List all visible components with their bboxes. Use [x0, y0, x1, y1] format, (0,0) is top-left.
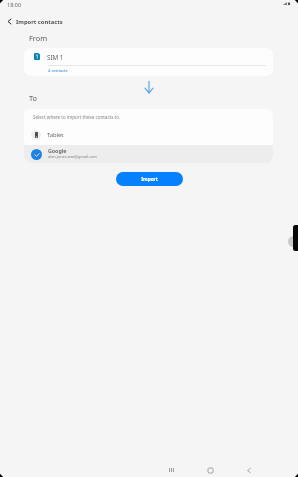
staticText: 18:00 [7, 1, 22, 8]
staticText: Tablet [47, 131, 64, 139]
staticText: To [29, 93, 38, 103]
button[interactable]: Back [0, 12, 19, 31]
staticText: Select where to import these contacts to… [33, 114, 121, 120]
staticText: Import [141, 176, 158, 182]
staticText: SIM 1 [47, 53, 64, 61]
button[interactable]: Home [197, 457, 223, 477]
button[interactable]: Recents [158, 457, 184, 477]
staticText: 4 contacts [48, 68, 68, 74]
staticText: From [29, 33, 48, 43]
staticText: Import contacts [16, 18, 63, 26]
button[interactable]: SIM 1 [24, 48, 273, 76]
button[interactable]: Import [116, 172, 183, 186]
button[interactable]: Edge panel [293, 225, 298, 251]
button[interactable]: Google [24, 145, 273, 163]
button[interactable]: Tablet [24, 125, 273, 144]
staticText: alan.jones.wm@gmail.com [48, 154, 97, 159]
staticText: Google [48, 147, 67, 154]
button[interactable]: Back [236, 457, 262, 477]
